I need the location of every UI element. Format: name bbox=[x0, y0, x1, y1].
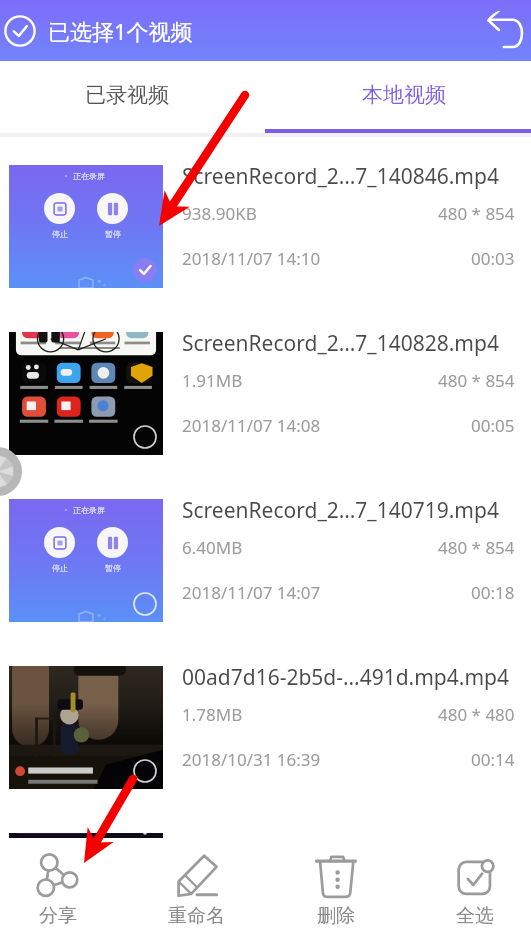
button[interactable]: 00ad7d16-2b5d-…491d.mp4.mp4 bbox=[0, 638, 531, 805]
staticText: 6.40MB bbox=[182, 536, 243, 559]
staticText: 正在录屏 bbox=[73, 171, 105, 181]
button[interactable]: 重命名 bbox=[127, 838, 266, 934]
button[interactable]: Selected bbox=[1, 12, 39, 50]
button[interactable]: 正在录屏 bbox=[0, 137, 531, 304]
staticText: 2018/11/07 14:10 bbox=[182, 247, 321, 270]
staticText: 已选择1个视频 bbox=[48, 16, 193, 46]
staticText: 停止 bbox=[52, 229, 68, 239]
staticText: 2018/11/07 14:08 bbox=[182, 414, 321, 437]
button[interactable]: 全选 bbox=[405, 838, 531, 934]
button[interactable] bbox=[0, 805, 531, 839]
button[interactable]: 正在录屏 bbox=[0, 471, 531, 638]
staticText: ScreenRecord_2…7_140846.mp4 bbox=[182, 162, 499, 191]
staticText: 分享 bbox=[39, 904, 77, 928]
staticText: 480 * 854 bbox=[438, 536, 515, 559]
staticText: 暂停 bbox=[105, 229, 121, 239]
button[interactable]: Undo bbox=[484, 10, 526, 52]
staticText: 00:05 bbox=[471, 414, 515, 437]
staticText: 重命名 bbox=[168, 904, 225, 928]
staticText: 480 * 854 bbox=[438, 202, 515, 225]
staticText: 00:14 bbox=[471, 748, 515, 771]
staticText: 停止 bbox=[52, 563, 68, 573]
staticText: 2018/10/31 16:39 bbox=[182, 748, 321, 771]
button[interactable]: 本地视频 bbox=[265, 61, 531, 129]
staticText: 暂停 bbox=[105, 563, 121, 573]
staticText: 00:03 bbox=[471, 247, 515, 270]
button[interactable]: Assistive touch bbox=[0, 447, 22, 496]
staticText: ScreenRecord_2…7_140719.mp4 bbox=[182, 496, 499, 525]
staticText: 2018/11/07 14:07 bbox=[182, 581, 321, 604]
staticText: 480 * 854 bbox=[438, 369, 515, 392]
staticText: 本地视频 bbox=[362, 82, 446, 108]
staticText: 全选 bbox=[456, 904, 494, 928]
staticText: 938.90KB bbox=[182, 202, 257, 225]
button[interactable]: 删除 bbox=[266, 838, 405, 934]
button[interactable]: ScreenRecord_2…7_140828.mp4 bbox=[0, 304, 531, 471]
staticText: ScreenRecord_2…7_140828.mp4 bbox=[182, 329, 499, 358]
staticText: 480 * 480 bbox=[438, 703, 515, 726]
staticText: 删除 bbox=[317, 904, 355, 928]
staticText: 00:18 bbox=[471, 581, 515, 604]
button[interactable]: 分享 bbox=[0, 838, 127, 934]
staticText: 00ad7d16-2b5d-…491d.mp4.mp4 bbox=[182, 663, 509, 692]
staticText: 1.91MB bbox=[182, 369, 243, 392]
staticText: 已录视频 bbox=[85, 82, 169, 108]
button[interactable]: 已录视频 bbox=[0, 61, 265, 129]
staticText: 1.78MB bbox=[182, 703, 243, 726]
staticText: 正在录屏 bbox=[73, 505, 105, 515]
